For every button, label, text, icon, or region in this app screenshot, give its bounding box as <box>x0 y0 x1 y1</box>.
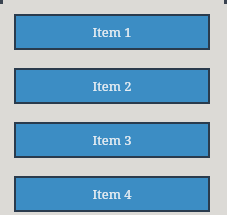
button[interactable]: Item 3 <box>14 122 210 158</box>
staticText: Item 3 <box>92 131 132 149</box>
button[interactable]: Item 2 <box>14 68 210 104</box>
staticText: Item 4 <box>92 185 132 203</box>
staticText: Item 2 <box>92 77 132 95</box>
button[interactable]: Item 4 <box>14 176 210 212</box>
staticText: Item 1 <box>92 23 132 41</box>
button[interactable]: Item 1 <box>14 14 210 50</box>
